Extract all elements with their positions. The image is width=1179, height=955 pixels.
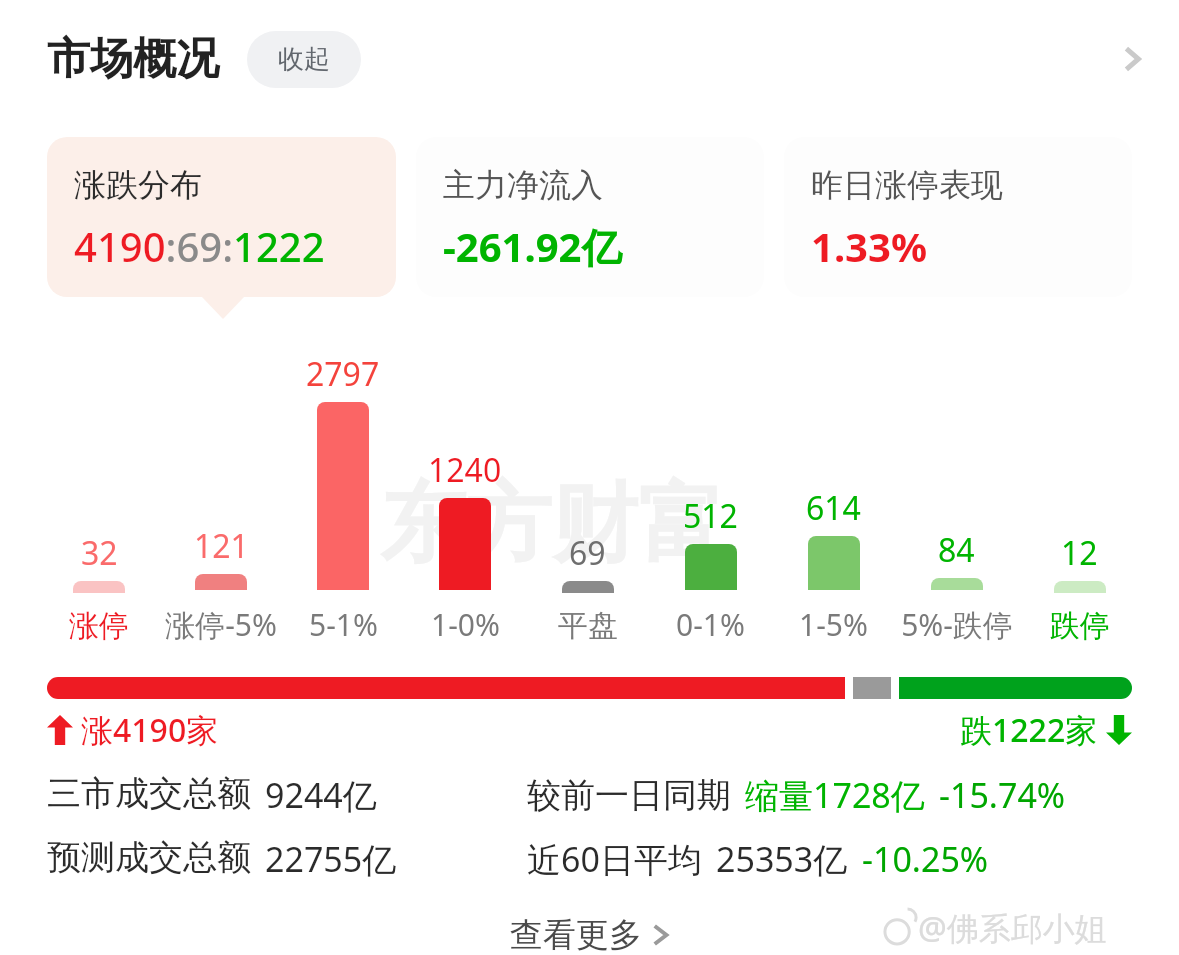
staticText: 涨停-5% xyxy=(165,604,277,645)
staticText: 1-0% xyxy=(431,604,500,645)
staticText: 三市成交总额 xyxy=(47,772,251,815)
staticText: 跌停 xyxy=(1050,607,1110,645)
staticText: 614 xyxy=(806,486,861,530)
staticText: 32 xyxy=(81,531,118,575)
staticText: 1-5% xyxy=(799,604,868,645)
staticText: 84 xyxy=(938,528,975,572)
staticText: -261.92亿 xyxy=(443,219,622,274)
staticText: -15.74% xyxy=(939,772,1066,818)
staticText: 5-1% xyxy=(309,604,378,645)
staticText: 较前一日同期 xyxy=(527,774,731,817)
button[interactable]: 涨跌分布 xyxy=(47,137,396,297)
staticText: @佛系邱小姐 xyxy=(918,906,1107,950)
staticText: 近60日平均 xyxy=(527,836,702,882)
button[interactable]: 更多 xyxy=(1097,24,1167,94)
staticText: 4190:69:1222 xyxy=(74,219,325,273)
staticText: 2797 xyxy=(306,352,380,396)
button[interactable]: 收起 xyxy=(247,31,361,88)
staticText: 512 xyxy=(683,494,738,538)
staticText: 平盘 xyxy=(558,607,618,645)
staticText: 1240 xyxy=(428,448,502,492)
staticText: 5%-跌停 xyxy=(901,604,1013,645)
staticText: 跌1222家 xyxy=(960,708,1098,752)
staticText: 查看更多 xyxy=(510,914,642,955)
staticText: 收起 xyxy=(278,43,330,76)
staticText: 缩量1728亿 xyxy=(745,772,925,818)
staticText: 22755亿 xyxy=(265,836,397,882)
staticText: 69 xyxy=(569,531,606,575)
staticText: 昨日涨停表现 xyxy=(811,165,1003,205)
staticText: 25353亿 xyxy=(716,836,848,882)
staticText: 东方财富 xyxy=(380,470,724,578)
staticText: 主力净流入 xyxy=(443,165,603,205)
staticText: 市场概况 xyxy=(47,32,219,86)
staticText: -10.25% xyxy=(862,836,989,882)
button[interactable]: 主力净流入 xyxy=(416,137,764,297)
staticText: 121 xyxy=(194,524,249,568)
staticText: 12 xyxy=(1061,531,1098,575)
button[interactable]: 查看更多 xyxy=(472,900,708,955)
button[interactable]: 昨日涨停表现 xyxy=(784,137,1132,297)
staticText: 9244亿 xyxy=(265,772,377,818)
staticText: 0-1% xyxy=(676,604,745,645)
staticText: 1.33% xyxy=(811,219,927,273)
staticText: 预测成交总额 xyxy=(47,836,251,879)
staticText: 涨跌分布 xyxy=(74,165,202,205)
staticText: 涨4190家 xyxy=(81,708,219,752)
staticText: 涨停 xyxy=(69,607,129,645)
